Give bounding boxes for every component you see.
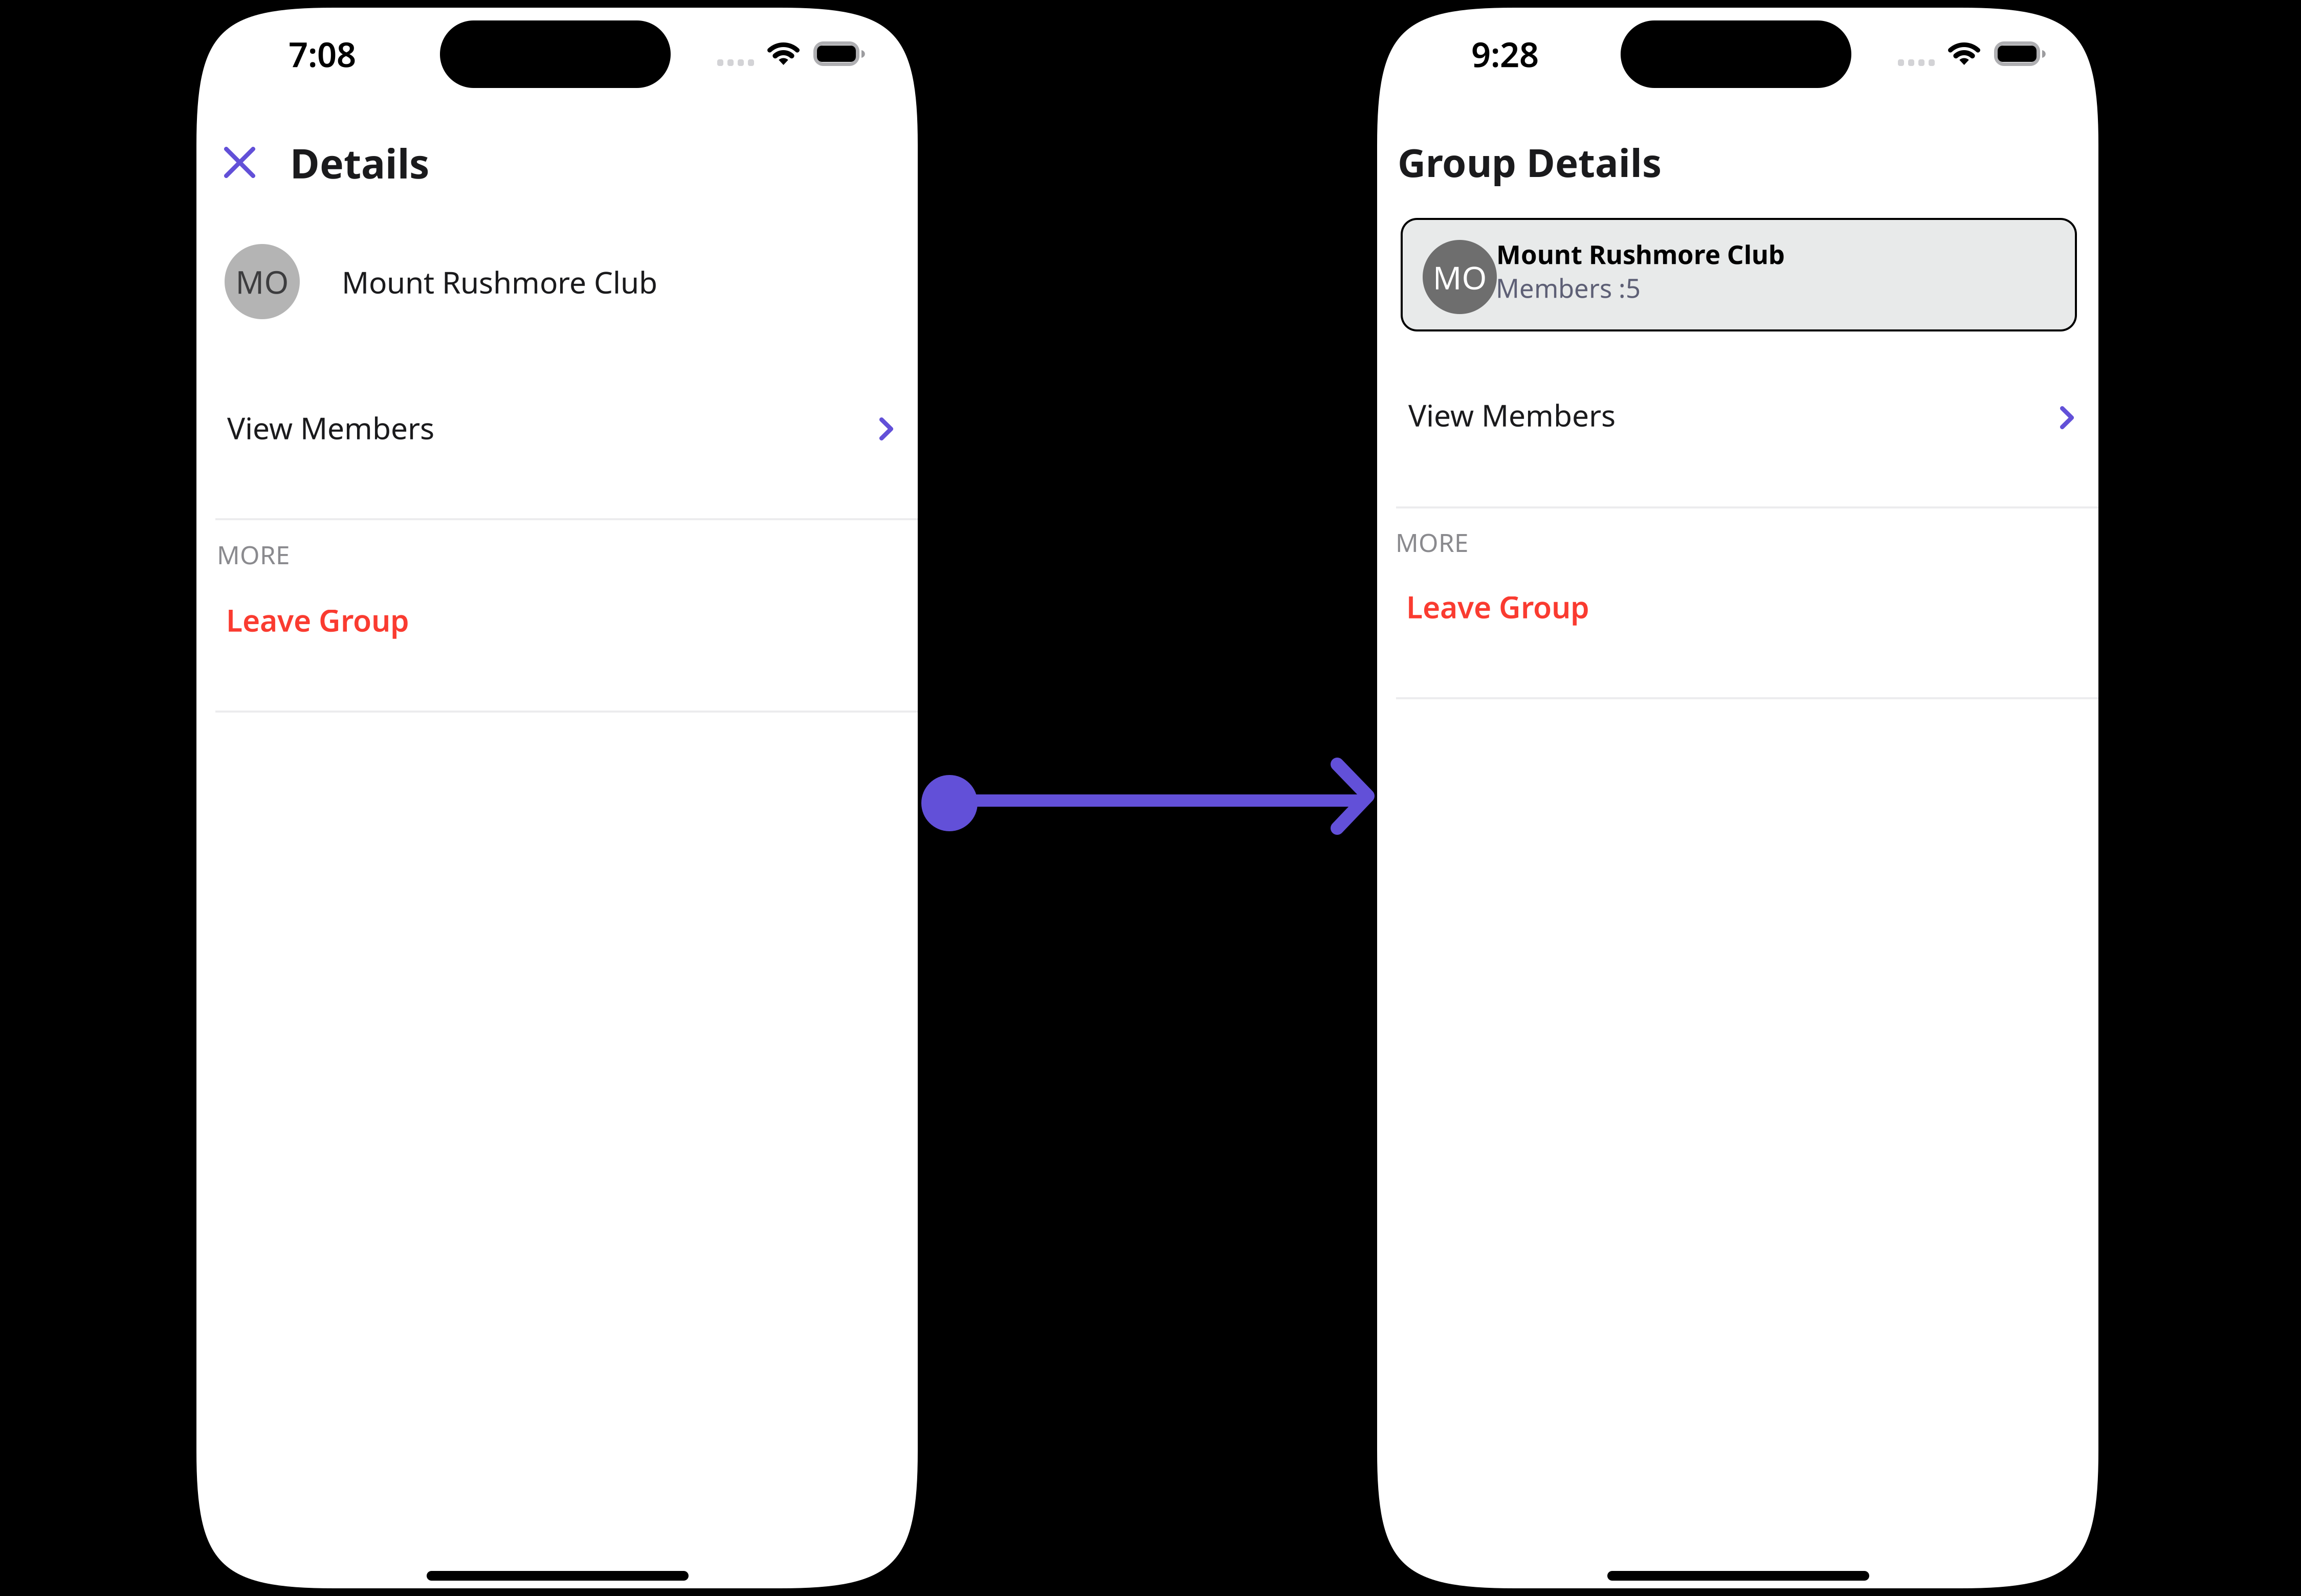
button[interactable]: MO [196, 224, 918, 339]
staticText: MO [1433, 256, 1487, 298]
button[interactable]: Leave Group [1377, 562, 2098, 639]
button[interactable]: Mount Rushmore Club, Members :5 [1402, 219, 2076, 330]
button[interactable]: View Members [196, 376, 918, 457]
staticText: Group Details [1398, 136, 1662, 188]
staticText: View Members [1408, 395, 1616, 435]
staticText: Mount Rushmore Club [342, 262, 657, 302]
button[interactable]: Leave Group [196, 575, 918, 652]
staticText: MORE [1396, 525, 1468, 559]
staticText: Leave Group [1406, 587, 1589, 627]
staticText: 7:08 [289, 31, 356, 76]
button[interactable]: Close [209, 131, 270, 193]
button[interactable]: View Members [1377, 363, 2098, 444]
button[interactable]: Details [280, 121, 444, 183]
staticText: 9:28 [1471, 31, 1539, 76]
staticText: MORE [217, 538, 290, 571]
staticText: View Members [227, 408, 434, 448]
staticText: Details [290, 136, 429, 190]
staticText: Members :5 [1496, 271, 1641, 305]
staticText: Mount Rushmore Club [1496, 237, 1785, 271]
staticText: MO [236, 261, 289, 302]
staticText: Leave Group [226, 600, 409, 640]
